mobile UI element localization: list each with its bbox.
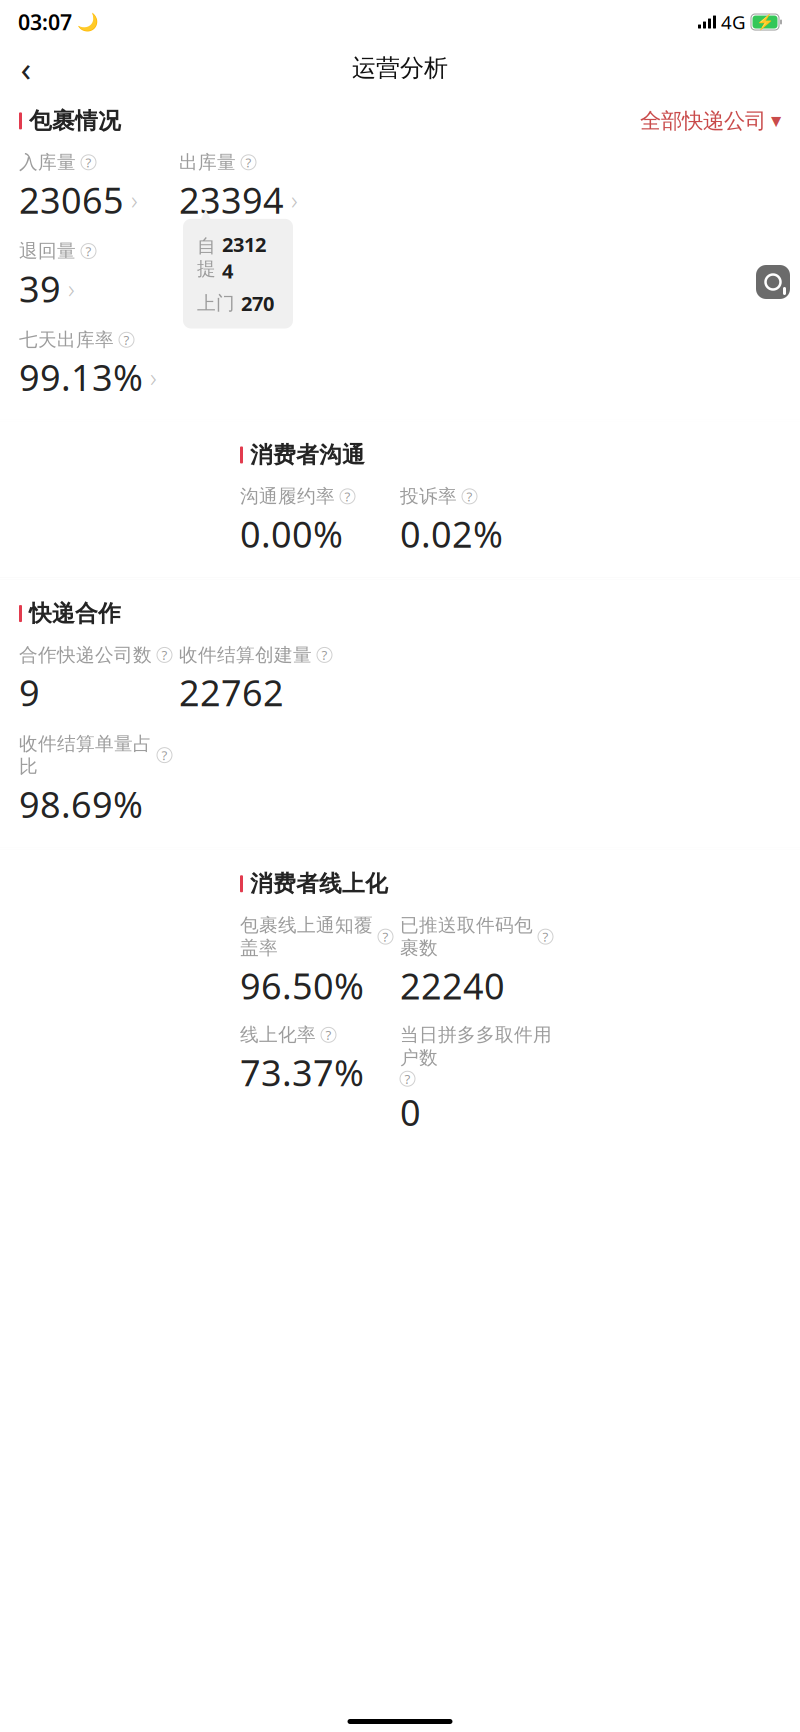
staticText: 出库量 — [179, 151, 236, 174]
staticText: 🌙 — [77, 12, 99, 32]
staticText: ? — [344, 487, 350, 505]
staticText: 39 — [19, 264, 61, 312]
staticText: 0.02% — [400, 510, 503, 558]
staticText: ? — [542, 928, 548, 945]
staticText: ? — [404, 1070, 410, 1088]
staticText: 收件结算创建量 — [179, 643, 312, 666]
staticText: ? — [466, 487, 472, 505]
button[interactable]: Back — [4, 46, 48, 90]
staticText: ? — [382, 928, 388, 945]
staticText: 消费者线上化 — [250, 870, 388, 898]
staticText: ⚡ — [756, 14, 774, 30]
staticText: 98.69% — [19, 780, 143, 828]
button[interactable]: Search — [756, 265, 790, 299]
staticText: ? — [321, 646, 327, 664]
staticText: 全部快递公司 — [640, 108, 766, 134]
staticText: 入库量 — [19, 151, 76, 174]
staticText: ? — [325, 1026, 331, 1044]
staticText: ? — [85, 153, 91, 171]
staticText: 22240 — [400, 962, 505, 1009]
staticText: › — [131, 183, 138, 216]
staticText: 270 — [241, 290, 274, 317]
staticText: 99.13% — [19, 353, 143, 401]
staticText: 收件结算单量占比 — [19, 732, 152, 778]
staticText: ‹ — [20, 45, 31, 91]
staticText: ▲ — [199, 205, 212, 225]
staticText: 0.00% — [240, 510, 343, 558]
staticText: 4G — [721, 10, 746, 34]
staticText: 96.50% — [240, 962, 364, 1009]
staticText: 运营分析 — [352, 53, 448, 83]
staticText: 03:07 — [18, 8, 72, 36]
staticText: 退回量 — [19, 240, 76, 262]
staticText: 73.37% — [240, 1048, 364, 1096]
staticText: 上门 — [197, 292, 235, 315]
staticText: ? — [123, 331, 129, 349]
staticText: 自提 — [197, 234, 216, 280]
staticText: 0 — [400, 1088, 421, 1136]
staticText: 七天出库率 — [19, 328, 114, 351]
staticText: › — [150, 360, 157, 394]
staticText: ? — [85, 242, 91, 260]
staticText: 23394 — [179, 176, 284, 224]
staticText: ▼ — [771, 113, 781, 128]
staticText: › — [291, 183, 298, 216]
staticText: 沟通履约率 — [240, 485, 335, 508]
staticText: 包裹情况 — [29, 107, 121, 135]
staticText: ? — [245, 153, 251, 171]
staticText: 投诉率 — [400, 485, 457, 508]
staticText: 快递合作 — [29, 600, 121, 627]
staticText: 9 — [19, 668, 40, 716]
staticText: 22762 — [179, 668, 284, 716]
button[interactable]: 全部快递公司 — [640, 108, 781, 134]
staticText: 包裹线上通知覆盖率 — [240, 914, 373, 960]
staticText: 23124 — [222, 231, 266, 284]
staticText: 23065 — [19, 176, 124, 224]
staticText: ? — [161, 646, 167, 664]
staticText: 已推送取件码包裹数 — [400, 914, 533, 960]
staticText: 消费者沟通 — [250, 441, 365, 469]
staticText: 合作快递公司数 — [19, 643, 152, 666]
staticText: ? — [161, 746, 167, 764]
staticText: 线上化率 — [240, 1023, 316, 1046]
staticText: 当日拼多多取件用户数 — [400, 1023, 552, 1069]
staticText: › — [68, 272, 75, 305]
